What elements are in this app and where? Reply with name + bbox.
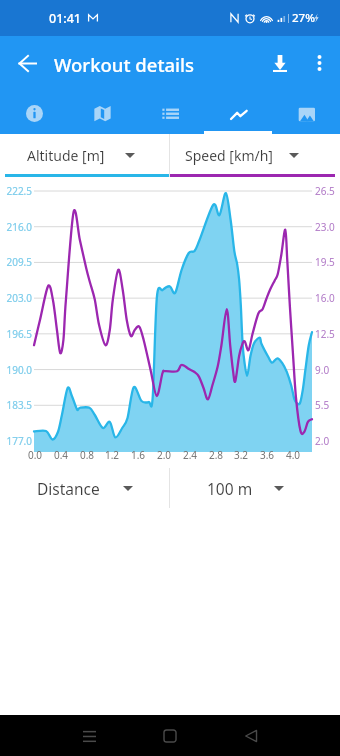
button[interactable]: Photos xyxy=(272,93,340,134)
staticText: 23.0 xyxy=(315,220,335,234)
staticText: Workout details xyxy=(54,52,195,77)
staticText: 203.0 xyxy=(0,291,32,305)
button[interactable]: Info xyxy=(0,93,68,134)
staticText: 2.4 xyxy=(176,448,204,462)
staticText: 5.5 xyxy=(315,398,330,412)
button[interactable]: Recents xyxy=(66,715,112,756)
staticText: 100 m xyxy=(207,478,253,499)
button[interactable]: More options xyxy=(295,39,340,87)
staticText: 16.0 xyxy=(315,291,335,305)
staticText: 2.0 xyxy=(315,434,330,448)
staticText: 216.0 xyxy=(0,220,32,234)
staticText: 19.5 xyxy=(315,255,335,269)
button[interactable]: Back xyxy=(228,715,274,756)
button[interactable]: Altitude [m] xyxy=(0,134,169,177)
staticText: 26.5 xyxy=(315,184,335,198)
staticText: 9.0 xyxy=(315,363,330,377)
button[interactable]: Laps xyxy=(136,93,204,134)
button[interactable]: Speed [km/h] xyxy=(170,134,340,177)
staticText: 190.0 xyxy=(0,363,32,377)
staticText: 12.5 xyxy=(315,327,335,341)
button[interactable]: Distance xyxy=(0,468,169,508)
staticText: Altitude [m] xyxy=(27,146,105,165)
staticText: 3.2 xyxy=(227,448,255,462)
staticText: 1.6 xyxy=(124,448,152,462)
staticText: 196.5 xyxy=(0,327,32,341)
button[interactable]: Navigate up xyxy=(3,39,51,87)
staticText: 2.8 xyxy=(202,448,230,462)
button[interactable]: Map xyxy=(68,93,136,134)
staticText: 0.4 xyxy=(47,448,75,462)
staticText: 01:41 xyxy=(49,10,82,27)
staticText: 0.0 xyxy=(21,448,49,462)
staticText: 4.0 xyxy=(279,448,307,462)
staticText: 222.5 xyxy=(0,184,32,198)
button[interactable]: Home xyxy=(147,715,193,756)
button[interactable]: Charts xyxy=(204,93,272,134)
staticText: 27% xyxy=(292,10,315,26)
staticText: 2.0 xyxy=(150,448,178,462)
staticText: Speed [km/h] xyxy=(185,146,273,165)
staticText: Distance xyxy=(37,478,100,499)
staticText: 1.2 xyxy=(98,448,126,462)
staticText: 183.5 xyxy=(0,398,32,412)
staticText: 3.6 xyxy=(253,448,281,462)
staticText: 0.8 xyxy=(73,448,101,462)
staticText: 177.0 xyxy=(0,434,32,448)
button[interactable]: 100 m xyxy=(170,468,340,508)
staticText: 209.5 xyxy=(0,255,32,269)
button[interactable]: Export xyxy=(256,39,304,87)
